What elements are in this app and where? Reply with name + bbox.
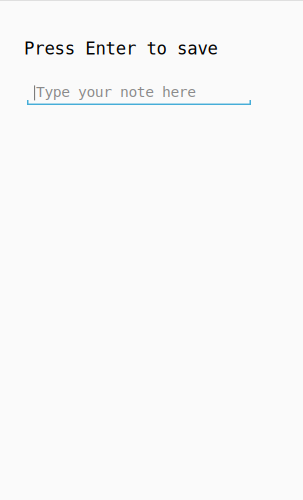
staticText: Press Enter to save: [24, 38, 218, 59]
button[interactable]: Type your note here: [27, 82, 251, 106]
staticText: Type your note here: [36, 83, 196, 101]
